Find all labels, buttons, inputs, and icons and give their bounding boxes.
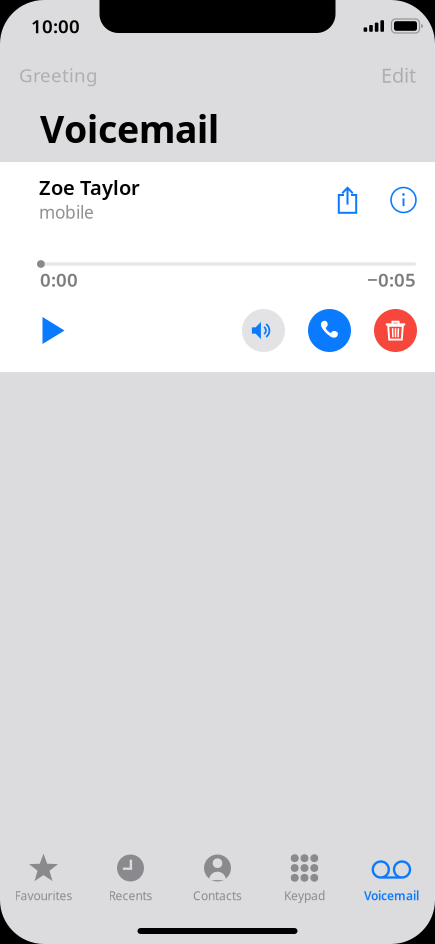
- button[interactable]: Favourites: [0, 854, 87, 900]
- button[interactable]: Call back: [308, 309, 351, 352]
- staticText: Voicemail: [40, 104, 219, 153]
- button[interactable]: Greeting: [16, 57, 100, 93]
- staticText: Voicemail: [364, 887, 419, 903]
- staticText: Zoe Taylor: [39, 174, 140, 201]
- staticText: 0:00: [40, 267, 78, 292]
- button[interactable]: Voicemail: [348, 854, 435, 900]
- button[interactable]: Delete: [374, 309, 417, 352]
- staticText: 10:00: [31, 14, 80, 38]
- button[interactable]: Keypad: [261, 854, 348, 900]
- staticText: −0:05: [367, 267, 416, 292]
- staticText: mobile: [39, 201, 94, 224]
- button[interactable]: Recents: [87, 854, 174, 900]
- button[interactable]: Contacts: [174, 854, 261, 900]
- button[interactable]: Speaker: [242, 309, 285, 352]
- staticText: Favourites: [14, 887, 72, 903]
- staticText: Edit: [381, 62, 416, 88]
- button[interactable]: Share: [331, 182, 364, 218]
- button[interactable]: Play: [35, 309, 72, 352]
- staticText: Recents: [108, 887, 152, 903]
- button[interactable]: Edit: [378, 56, 419, 94]
- staticText: Keypad: [284, 887, 325, 903]
- staticText: Greeting: [19, 63, 97, 87]
- button[interactable]: Voicemail details: [386, 183, 421, 216]
- staticText: Contacts: [193, 887, 242, 903]
